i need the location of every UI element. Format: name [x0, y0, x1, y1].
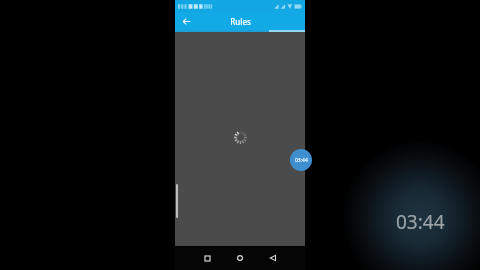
button[interactable]: 03:44	[290, 149, 312, 171]
staticText: Rules	[230, 16, 251, 27]
button[interactable]: Recent apps	[191, 246, 223, 270]
button[interactable]: Back	[175, 12, 197, 30]
staticText: 03:44	[396, 209, 445, 235]
button[interactable]: Back	[256, 246, 289, 270]
staticText: 03:44	[295, 157, 308, 164]
button[interactable]: Home	[223, 246, 256, 270]
